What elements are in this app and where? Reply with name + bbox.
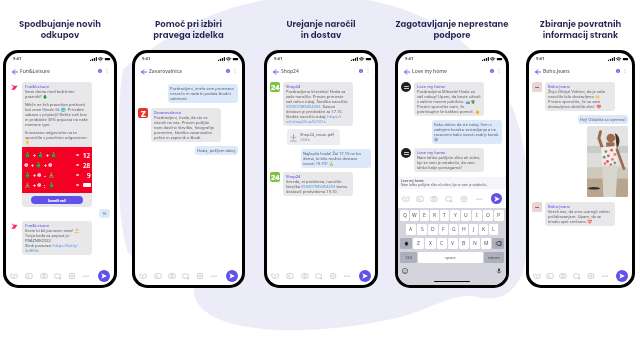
button[interactable]: V xyxy=(448,238,458,249)
button[interactable]: Camera xyxy=(40,272,48,280)
button[interactable]: I xyxy=(472,210,482,221)
button[interactable]: Stickers xyxy=(533,272,541,280)
button[interactable]: Files xyxy=(68,272,76,280)
staticText: : xyxy=(44,182,46,189)
button[interactable]: More xyxy=(343,272,351,280)
button[interactable]: Info xyxy=(358,68,364,74)
button[interactable]: Info xyxy=(615,68,621,74)
button[interactable]: Z xyxy=(413,238,424,249)
button[interactable]: R xyxy=(430,210,439,221)
staticText: Pomoč pri izbiri pravega izdelka xyxy=(132,18,245,41)
button[interactable]: Files xyxy=(460,195,468,203)
button[interactable]: More options xyxy=(496,68,502,74)
button[interactable]: B xyxy=(459,238,469,249)
staticText: ❄️ xyxy=(48,162,53,168)
button[interactable]: U xyxy=(461,210,471,221)
button[interactable]: Photos xyxy=(25,272,33,280)
button[interactable]: Send xyxy=(616,270,628,282)
button[interactable]: Camera xyxy=(559,272,567,280)
button[interactable]: Info xyxy=(489,68,495,74)
button[interactable]: Stickers xyxy=(271,272,279,280)
button[interactable]: Stickers xyxy=(402,195,410,203)
button[interactable]: Shop24_racun.pdf xyxy=(287,129,340,145)
button[interactable]: Photos xyxy=(546,272,554,280)
button[interactable]: Y xyxy=(450,210,460,221)
button[interactable]: More options xyxy=(622,68,628,74)
button[interactable]: Send xyxy=(98,270,110,282)
button[interactable]: More options xyxy=(365,68,371,74)
button[interactable]: Camera xyxy=(430,195,438,203)
button[interactable]: Back xyxy=(10,67,19,76)
button[interactable]: Backspace xyxy=(492,238,504,249)
staticText: E xyxy=(423,212,426,219)
button[interactable]: Stickers xyxy=(139,272,147,280)
button[interactable]: Back xyxy=(533,67,542,76)
button[interactable]: Photos xyxy=(154,272,162,280)
button[interactable]: More options xyxy=(232,68,238,74)
staticText: L xyxy=(492,226,495,233)
button[interactable]: N xyxy=(470,238,480,249)
button[interactable]: 123 xyxy=(400,252,417,263)
button[interactable]: F xyxy=(439,224,448,235)
button[interactable]: Dictate xyxy=(496,268,502,274)
button[interactable]: L xyxy=(489,224,498,235)
button[interactable]: More xyxy=(210,272,218,280)
button[interactable]: Send xyxy=(491,193,502,204)
staticText: ❄️ xyxy=(37,172,42,178)
button[interactable]: GIF xyxy=(573,272,581,280)
button[interactable]: Emoji xyxy=(402,268,408,274)
button[interactable]: E xyxy=(420,210,429,221)
button[interactable]: Photos xyxy=(416,195,424,203)
button[interactable]: GIF xyxy=(54,272,62,280)
button[interactable]: Camera xyxy=(301,272,309,280)
button[interactable]: G xyxy=(449,224,458,235)
staticText: = xyxy=(76,151,80,159)
button[interactable]: Camera xyxy=(168,272,176,280)
button[interactable]: Izvedi več xyxy=(31,196,83,204)
button[interactable]: More xyxy=(601,272,609,280)
staticText: Love my home xyxy=(417,150,446,155)
button[interactable]: P xyxy=(494,210,504,221)
button[interactable]: Back xyxy=(271,67,280,76)
staticText: ❄️ xyxy=(37,182,42,188)
staticText: + xyxy=(33,182,36,189)
button[interactable]: Files xyxy=(587,272,595,280)
button[interactable]: Shift xyxy=(400,238,412,249)
staticText: Enostavno odgovorite na to sporočilo s p… xyxy=(25,130,89,145)
button[interactable]: O xyxy=(483,210,493,221)
button[interactable]: Info xyxy=(225,68,231,74)
button[interactable]: More options xyxy=(104,68,110,74)
button[interactable]: GIF xyxy=(315,272,323,280)
button[interactable]: A xyxy=(406,224,416,235)
button[interactable]: Files xyxy=(329,272,337,280)
button[interactable]: H xyxy=(459,224,468,235)
button[interactable]: J xyxy=(469,224,478,235)
staticText: D xyxy=(431,226,435,233)
button[interactable]: Q xyxy=(400,210,409,221)
button[interactable]: M xyxy=(481,238,491,249)
button[interactable]: W xyxy=(410,210,419,221)
button[interactable]: Back xyxy=(402,67,411,76)
staticText: Shop24 xyxy=(281,68,299,75)
button[interactable]: X xyxy=(425,238,436,249)
button[interactable]: Stickers xyxy=(10,272,18,280)
button[interactable]: GIF xyxy=(182,272,190,280)
button[interactable]: space xyxy=(418,252,483,263)
button[interactable]: More xyxy=(82,272,90,280)
button[interactable]: return xyxy=(484,252,504,263)
button[interactable]: K xyxy=(479,224,488,235)
button[interactable]: Send xyxy=(359,270,371,282)
button[interactable]: Photos xyxy=(286,272,294,280)
staticText: O xyxy=(486,212,490,219)
button[interactable]: Files xyxy=(196,272,204,280)
button[interactable]: D xyxy=(428,224,438,235)
button[interactable]: More xyxy=(475,195,483,203)
button[interactable]: Info xyxy=(97,68,103,74)
button[interactable]: Back xyxy=(139,67,148,76)
staticText: Veseli nas, da smo ustregli vašim pričak… xyxy=(548,209,612,224)
button[interactable]: GIF xyxy=(445,195,453,203)
button[interactable]: C xyxy=(437,238,447,249)
button[interactable]: T xyxy=(440,210,449,221)
button[interactable]: Send xyxy=(226,270,238,282)
button[interactable]: S xyxy=(417,224,427,235)
